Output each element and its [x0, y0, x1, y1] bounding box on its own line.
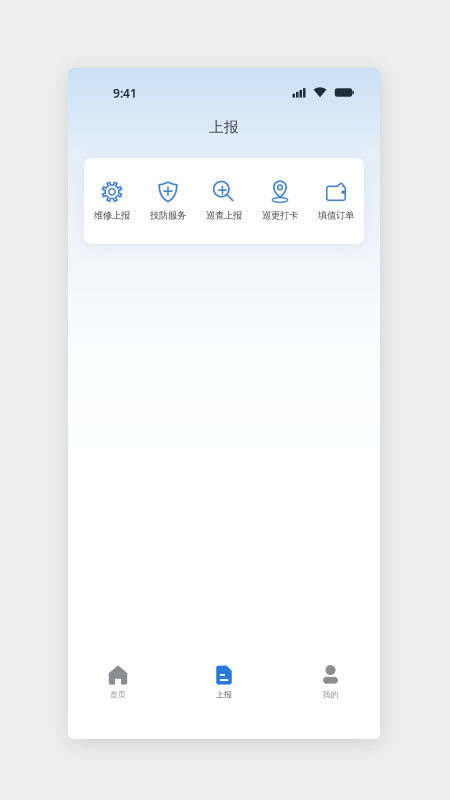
button[interactable]: 上报: [174, 660, 274, 704]
button[interactable]: 首页: [68, 660, 168, 704]
staticText: 9:41: [113, 85, 137, 101]
button[interactable]: 技防服务: [140, 158, 196, 244]
staticText: 上报: [216, 690, 232, 699]
staticText: 填值订单: [318, 210, 354, 221]
staticText: 上报: [209, 118, 239, 136]
button[interactable]: 维修上报: [84, 158, 140, 244]
staticText: 首页: [110, 690, 126, 699]
button[interactable]: 填值订单: [308, 158, 364, 244]
staticText: 我的: [322, 690, 338, 699]
staticText: 维修上报: [94, 210, 130, 221]
button[interactable]: 巡更打卡: [252, 158, 308, 244]
staticText: 技防服务: [150, 210, 186, 221]
button[interactable]: 巡查上报: [196, 158, 252, 244]
staticText: 巡查上报: [206, 210, 242, 221]
button[interactable]: 我的: [280, 660, 380, 704]
staticText: 巡更打卡: [262, 210, 298, 221]
